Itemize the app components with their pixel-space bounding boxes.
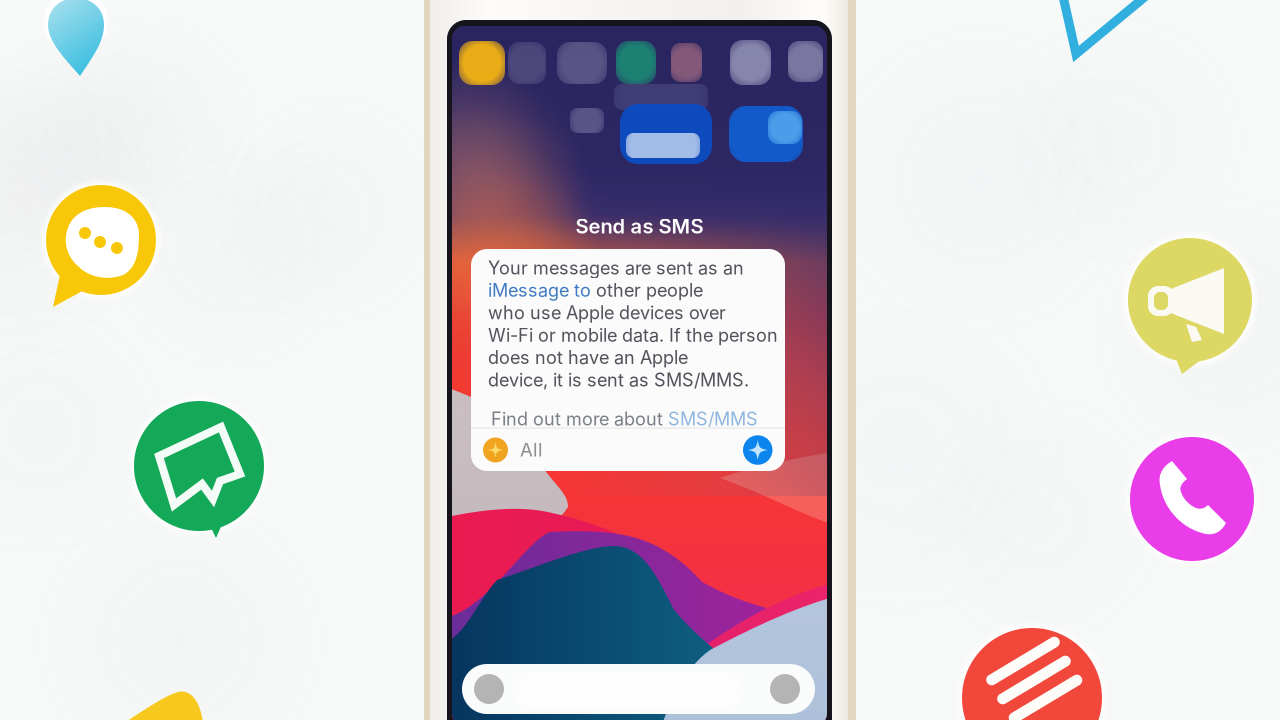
staticText: device, it is sent as SMS/MMS. xyxy=(488,369,749,391)
staticText: Find out more about xyxy=(491,408,663,430)
staticText: iMessage to xyxy=(488,279,591,301)
staticText: does not have an Apple xyxy=(488,347,688,368)
staticText: other people xyxy=(596,279,703,301)
staticText: Your messages are sent as an xyxy=(488,257,744,279)
button[interactable]: Siri xyxy=(474,674,504,704)
button[interactable]: Camera xyxy=(770,674,800,704)
staticText: All xyxy=(520,438,543,461)
staticText: Send as SMS xyxy=(575,214,703,238)
staticText: who use Apple devices over xyxy=(488,302,726,324)
staticText: Wi-Fi or mobile data. If the person xyxy=(488,324,778,346)
staticText: SMS/MMS xyxy=(668,408,758,430)
button[interactable]: All xyxy=(471,428,785,471)
